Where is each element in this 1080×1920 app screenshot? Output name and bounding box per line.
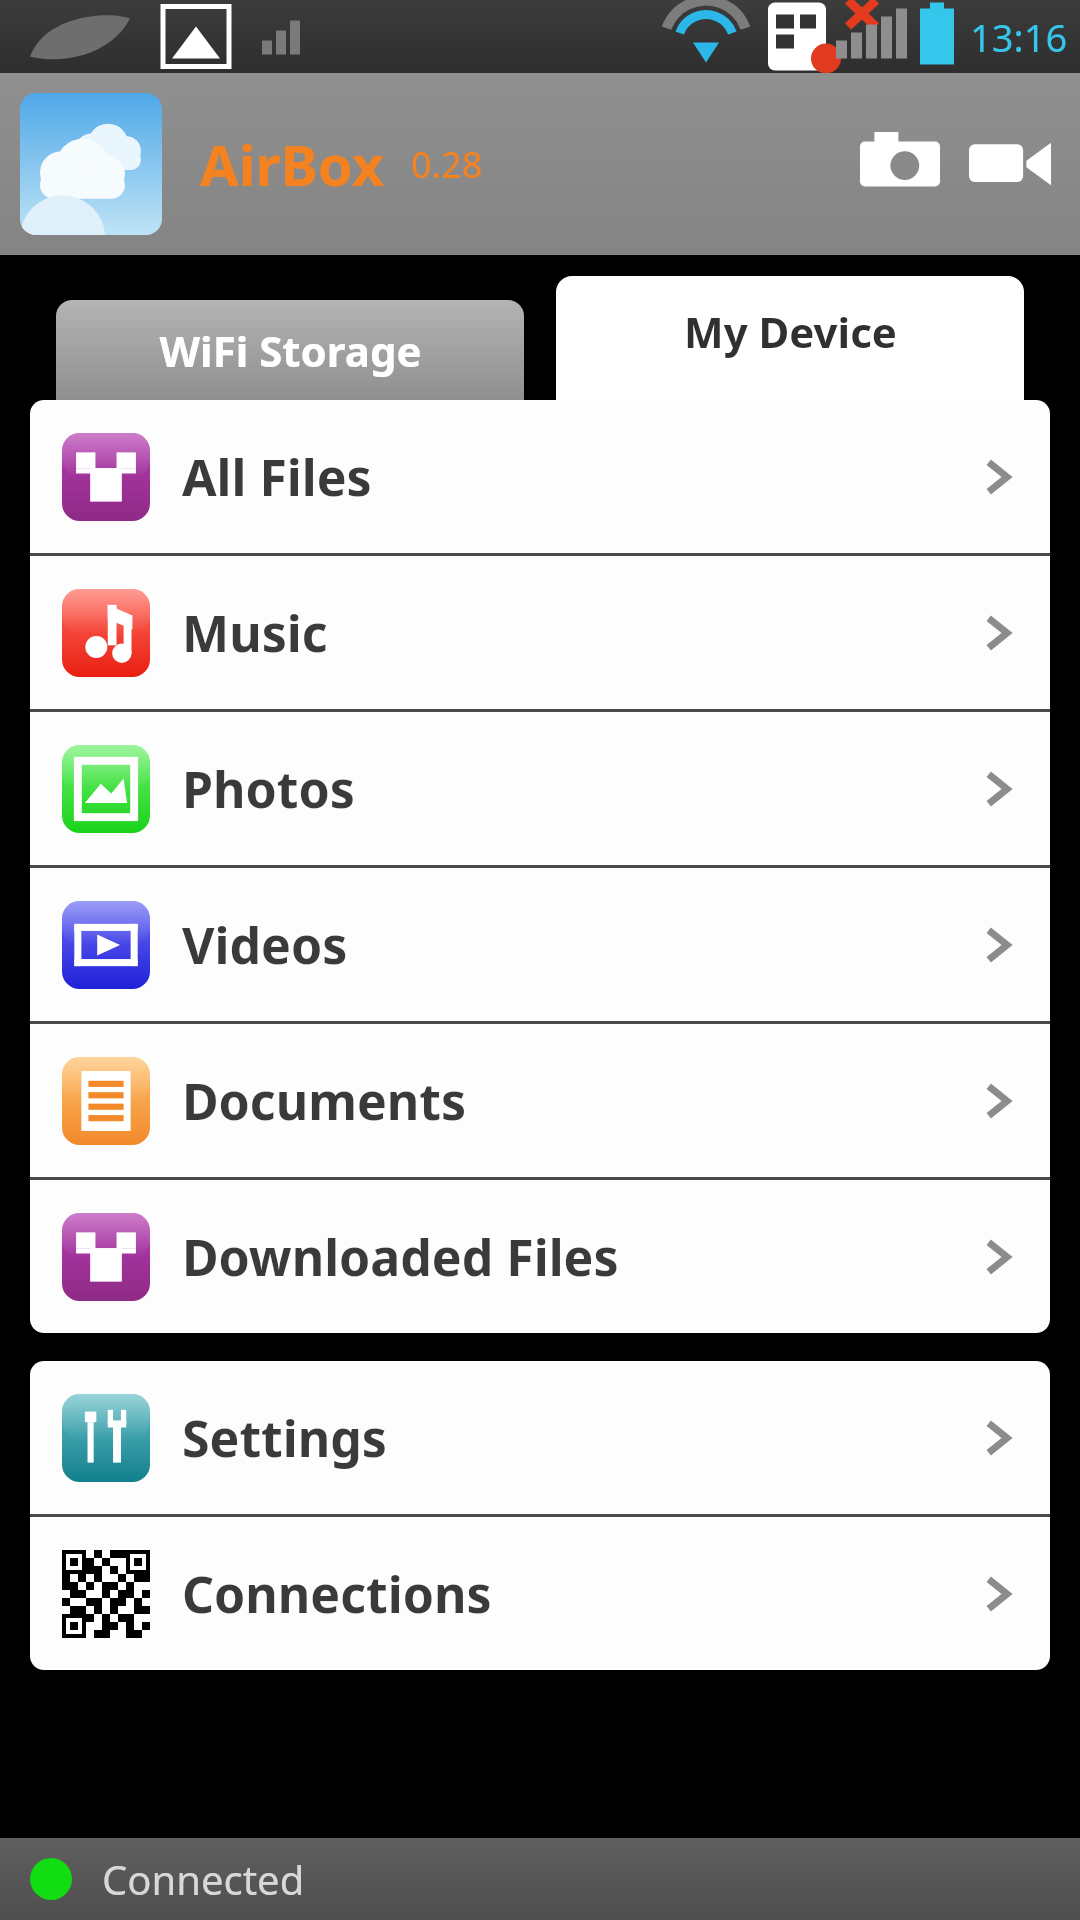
staticText: Photos — [182, 755, 355, 823]
staticText: Documents — [182, 1067, 467, 1135]
button[interactable]: Take photo — [852, 116, 948, 212]
staticText: All Files — [182, 443, 372, 511]
staticText: Connected — [102, 1852, 305, 1906]
button[interactable]: Documents — [30, 1024, 1050, 1177]
staticText: Music — [182, 599, 328, 667]
button[interactable]: AirBox logo — [20, 93, 162, 235]
staticText: Settings — [182, 1404, 387, 1472]
staticText: My Device — [684, 303, 897, 360]
staticText: AirBox — [200, 126, 385, 202]
button[interactable]: Record video — [962, 116, 1058, 212]
staticText: Videos — [182, 911, 348, 979]
button[interactable]: Videos — [30, 868, 1050, 1021]
button[interactable]: Connections — [30, 1517, 1050, 1670]
staticText: 0.28 — [411, 140, 483, 189]
button[interactable]: Downloaded Files — [30, 1180, 1050, 1333]
button[interactable]: WiFi Storage — [56, 300, 524, 400]
staticText: WiFi Storage — [159, 322, 422, 379]
button[interactable]: Photos — [30, 712, 1050, 865]
button[interactable]: Music — [30, 556, 1050, 709]
button[interactable]: All Files — [30, 400, 1050, 553]
staticText: Connections — [182, 1560, 492, 1628]
staticText: 13:16 — [970, 11, 1068, 63]
button[interactable]: My Device — [556, 276, 1024, 400]
button[interactable]: Settings — [30, 1361, 1050, 1514]
staticText: Downloaded Files — [182, 1223, 619, 1291]
